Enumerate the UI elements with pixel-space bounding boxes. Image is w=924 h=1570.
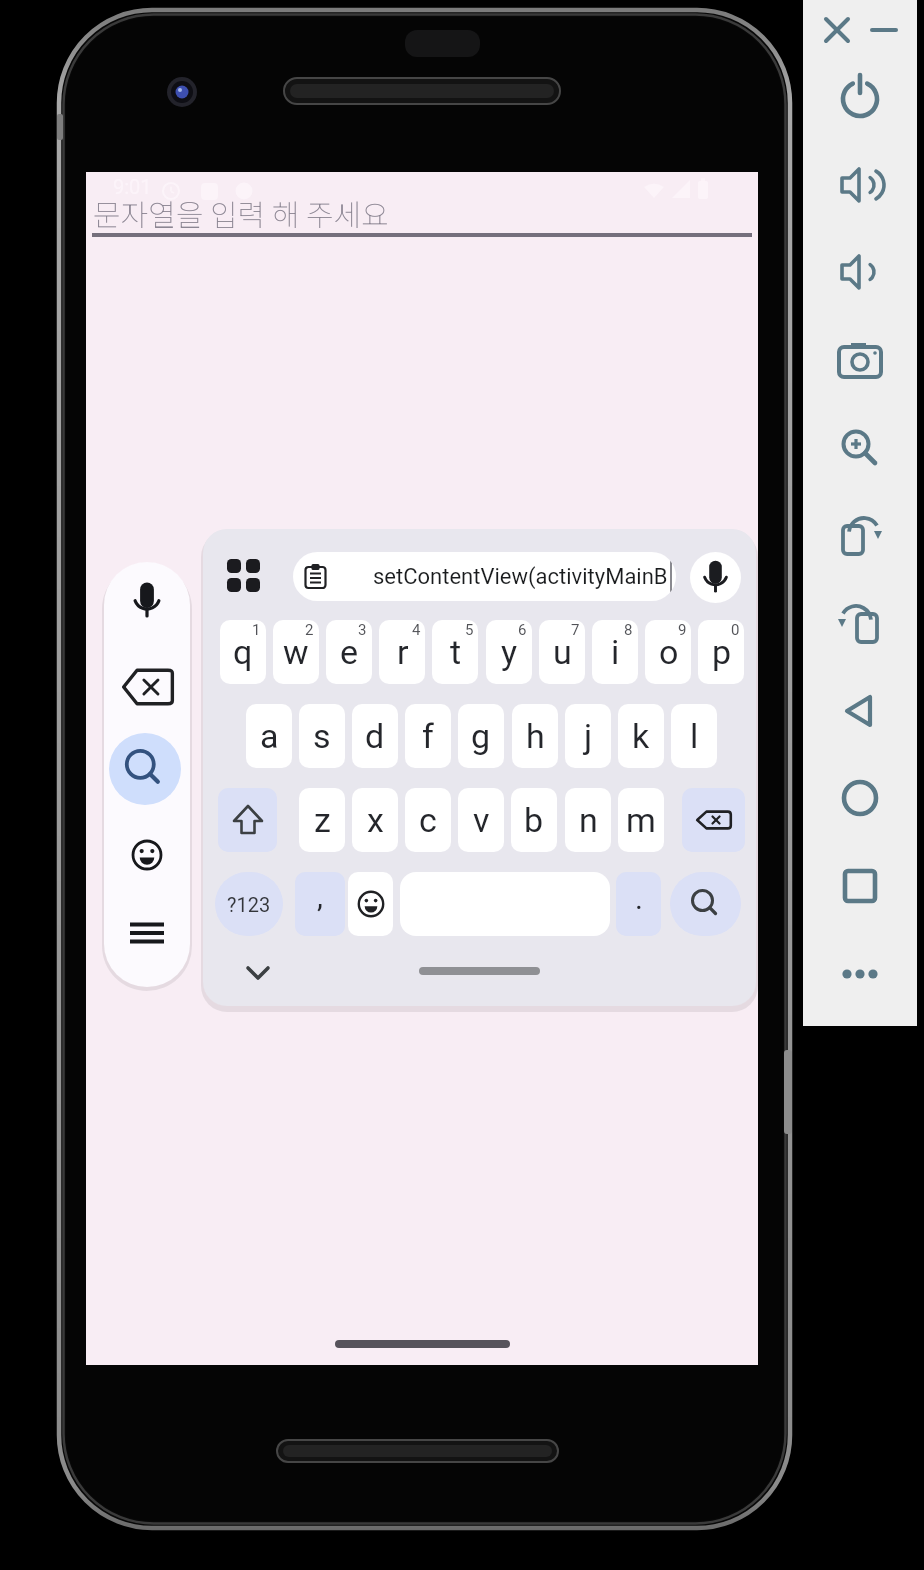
button[interactable]: n: [565, 788, 611, 852]
button[interactable]: s: [299, 704, 345, 768]
button[interactable]: [832, 595, 888, 651]
staticText: s: [313, 716, 331, 756]
button[interactable]: [348, 872, 393, 936]
staticText: .: [635, 881, 643, 916]
button[interactable]: [233, 953, 283, 993]
staticText: r: [397, 632, 409, 672]
button[interactable]: [119, 905, 175, 961]
staticText: t: [450, 632, 462, 672]
staticText: 3: [358, 621, 367, 639]
staticText: j: [584, 716, 593, 756]
button[interactable]: ,: [295, 872, 345, 936]
button[interactable]: [690, 552, 741, 603]
button[interactable]: h: [512, 704, 558, 768]
button[interactable]: [218, 788, 277, 852]
button[interactable]: [220, 620, 266, 684]
button[interactable]: [119, 827, 175, 883]
button[interactable]: [645, 620, 691, 684]
button[interactable]: j: [565, 704, 611, 768]
button[interactable]: [419, 967, 540, 975]
staticText: i: [611, 632, 620, 672]
staticText: a: [260, 716, 279, 756]
button[interactable]: ?123: [215, 872, 283, 936]
button[interactable]: v: [458, 788, 504, 852]
staticText: 6: [518, 621, 527, 639]
staticText: y: [501, 632, 518, 672]
button[interactable]: f: [405, 704, 451, 768]
button[interactable]: [119, 659, 177, 715]
staticText: 2: [305, 621, 314, 639]
staticText: q: [233, 632, 253, 672]
staticText: z: [314, 800, 331, 840]
staticText: ,: [317, 879, 323, 914]
staticText: c: [419, 800, 437, 840]
button[interactable]: [592, 620, 638, 684]
staticText: 7: [571, 621, 580, 639]
button[interactable]: g: [458, 704, 504, 768]
button[interactable]: [832, 683, 888, 739]
button[interactable]: a: [246, 704, 292, 768]
button[interactable]: [539, 620, 585, 684]
staticText: p: [712, 632, 732, 672]
staticText: 8: [624, 621, 633, 639]
button[interactable]: [832, 946, 888, 1002]
button[interactable]: [273, 620, 319, 684]
button[interactable]: [832, 332, 888, 388]
staticText: o: [659, 632, 679, 672]
button[interactable]: [86, 172, 758, 244]
staticText: e: [340, 632, 359, 672]
staticText: m: [626, 800, 656, 840]
staticText: 5: [465, 621, 474, 639]
staticText: u: [553, 632, 572, 672]
button[interactable]: c: [405, 788, 451, 852]
staticText: setContentView(activityMainB: [373, 564, 668, 590]
button[interactable]: [832, 507, 888, 563]
button[interactable]: [432, 620, 478, 684]
staticText: f: [422, 716, 434, 756]
button[interactable]: [864, 10, 904, 50]
staticText: ?123: [227, 893, 271, 916]
button[interactable]: [326, 620, 372, 684]
button[interactable]: [832, 420, 888, 476]
staticText: v: [473, 800, 490, 840]
staticText: w: [283, 632, 309, 672]
button[interactable]: b: [511, 788, 557, 852]
button[interactable]: d: [352, 704, 398, 768]
staticText: 9: [678, 621, 687, 639]
button[interactable]: [217, 549, 269, 601]
staticText: g: [471, 716, 491, 756]
button[interactable]: k: [618, 704, 664, 768]
button[interactable]: [817, 10, 857, 50]
button[interactable]: [832, 69, 888, 125]
staticText: 0: [731, 621, 740, 639]
staticText: 4: [412, 621, 421, 639]
staticText: n: [579, 800, 598, 840]
button[interactable]: l: [671, 704, 717, 768]
button[interactable]: [670, 872, 741, 936]
staticText: d: [365, 716, 385, 756]
button[interactable]: z: [299, 788, 345, 852]
button[interactable]: [832, 157, 888, 213]
staticText: h: [526, 716, 545, 756]
staticText: k: [632, 716, 650, 756]
button[interactable]: [119, 573, 175, 629]
button[interactable]: [379, 620, 425, 684]
button[interactable]: x: [352, 788, 398, 852]
staticText: l: [690, 716, 699, 756]
button[interactable]: [832, 770, 888, 826]
staticText: 1: [252, 621, 261, 639]
staticText: 문자열을 입력 해 주세요: [93, 191, 389, 234]
button[interactable]: [682, 788, 745, 852]
staticText: x: [367, 800, 384, 840]
button[interactable]: setContentView(activityMainB: [293, 552, 676, 601]
button[interactable]: m: [618, 788, 664, 852]
button[interactable]: .: [616, 872, 661, 936]
button[interactable]: [109, 733, 181, 805]
button[interactable]: [832, 244, 888, 300]
button[interactable]: [698, 620, 744, 684]
button[interactable]: [486, 620, 532, 684]
button[interactable]: [832, 858, 888, 914]
staticText: b: [524, 800, 544, 840]
